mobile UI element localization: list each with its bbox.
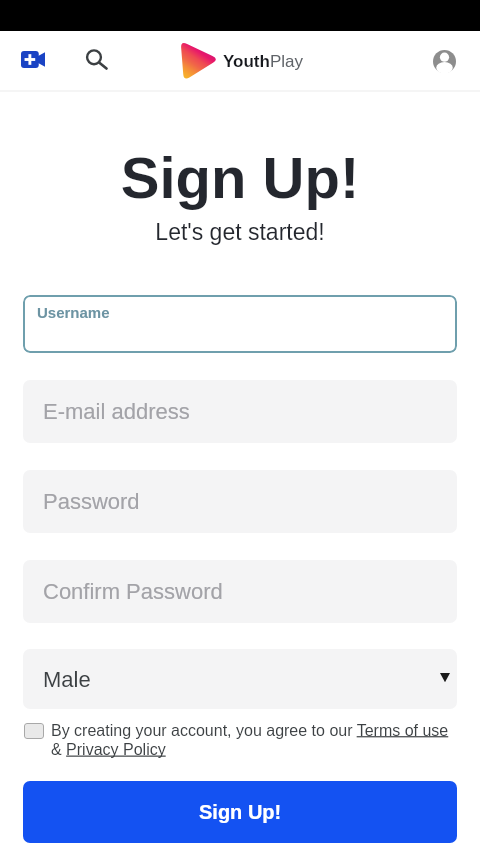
button[interactable]: Sign Up! [23,781,457,843]
staticText: Sign Up! [199,801,282,823]
staticText: Password [43,489,140,514]
staticText: YouthPlay [223,52,303,71]
button[interactable]: Account [422,39,466,83]
button[interactable]: Create video [11,39,55,83]
staticText: Username [37,304,110,321]
staticText: By creating your account, you agree to o… [51,722,449,759]
button[interactable]: Confirm Password [23,560,457,623]
button[interactable]: Username [23,295,457,353]
staticText: Let's get started! [0,219,480,245]
button[interactable]: E-mail address [23,380,457,443]
staticText: E-mail address [43,399,190,424]
staticText: Confirm Password [43,579,223,604]
staticText: Male [43,667,91,692]
button[interactable]: Search [75,39,119,83]
button[interactable]: Accept terms and conditions [24,723,44,739]
button[interactable]: Male [23,649,457,709]
button[interactable]: Password [23,470,457,533]
staticText: Sign Up! [0,145,480,210]
